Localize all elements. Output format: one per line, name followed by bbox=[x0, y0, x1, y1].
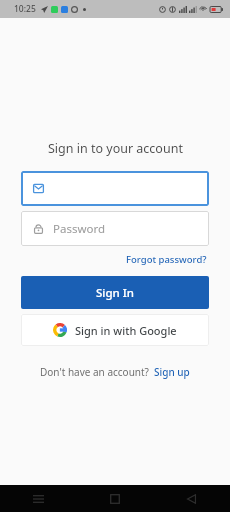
staticText: Sign in to your account bbox=[48, 140, 183, 157]
button[interactable] bbox=[21, 171, 209, 206]
button[interactable]: Forgot password? bbox=[124, 251, 209, 268]
staticText: Sign In bbox=[96, 285, 135, 301]
button[interactable]: Recent apps bbox=[0, 485, 76, 512]
button[interactable]: Password bbox=[21, 211, 209, 246]
button[interactable]: Sign in with Google bbox=[21, 314, 209, 346]
staticText: Sign in with Google bbox=[75, 323, 177, 338]
staticText: Don't have an account? bbox=[40, 365, 149, 379]
staticText: Sign up bbox=[154, 365, 190, 379]
staticText: Password bbox=[53, 221, 106, 237]
staticText: Forgot password? bbox=[126, 253, 207, 266]
button[interactable]: Sign up bbox=[154, 363, 190, 381]
button[interactable]: Sign In bbox=[21, 276, 209, 309]
button[interactable]: Back bbox=[153, 485, 230, 512]
staticText: 10:25 bbox=[14, 3, 36, 15]
button[interactable]: Home bbox=[76, 485, 153, 512]
